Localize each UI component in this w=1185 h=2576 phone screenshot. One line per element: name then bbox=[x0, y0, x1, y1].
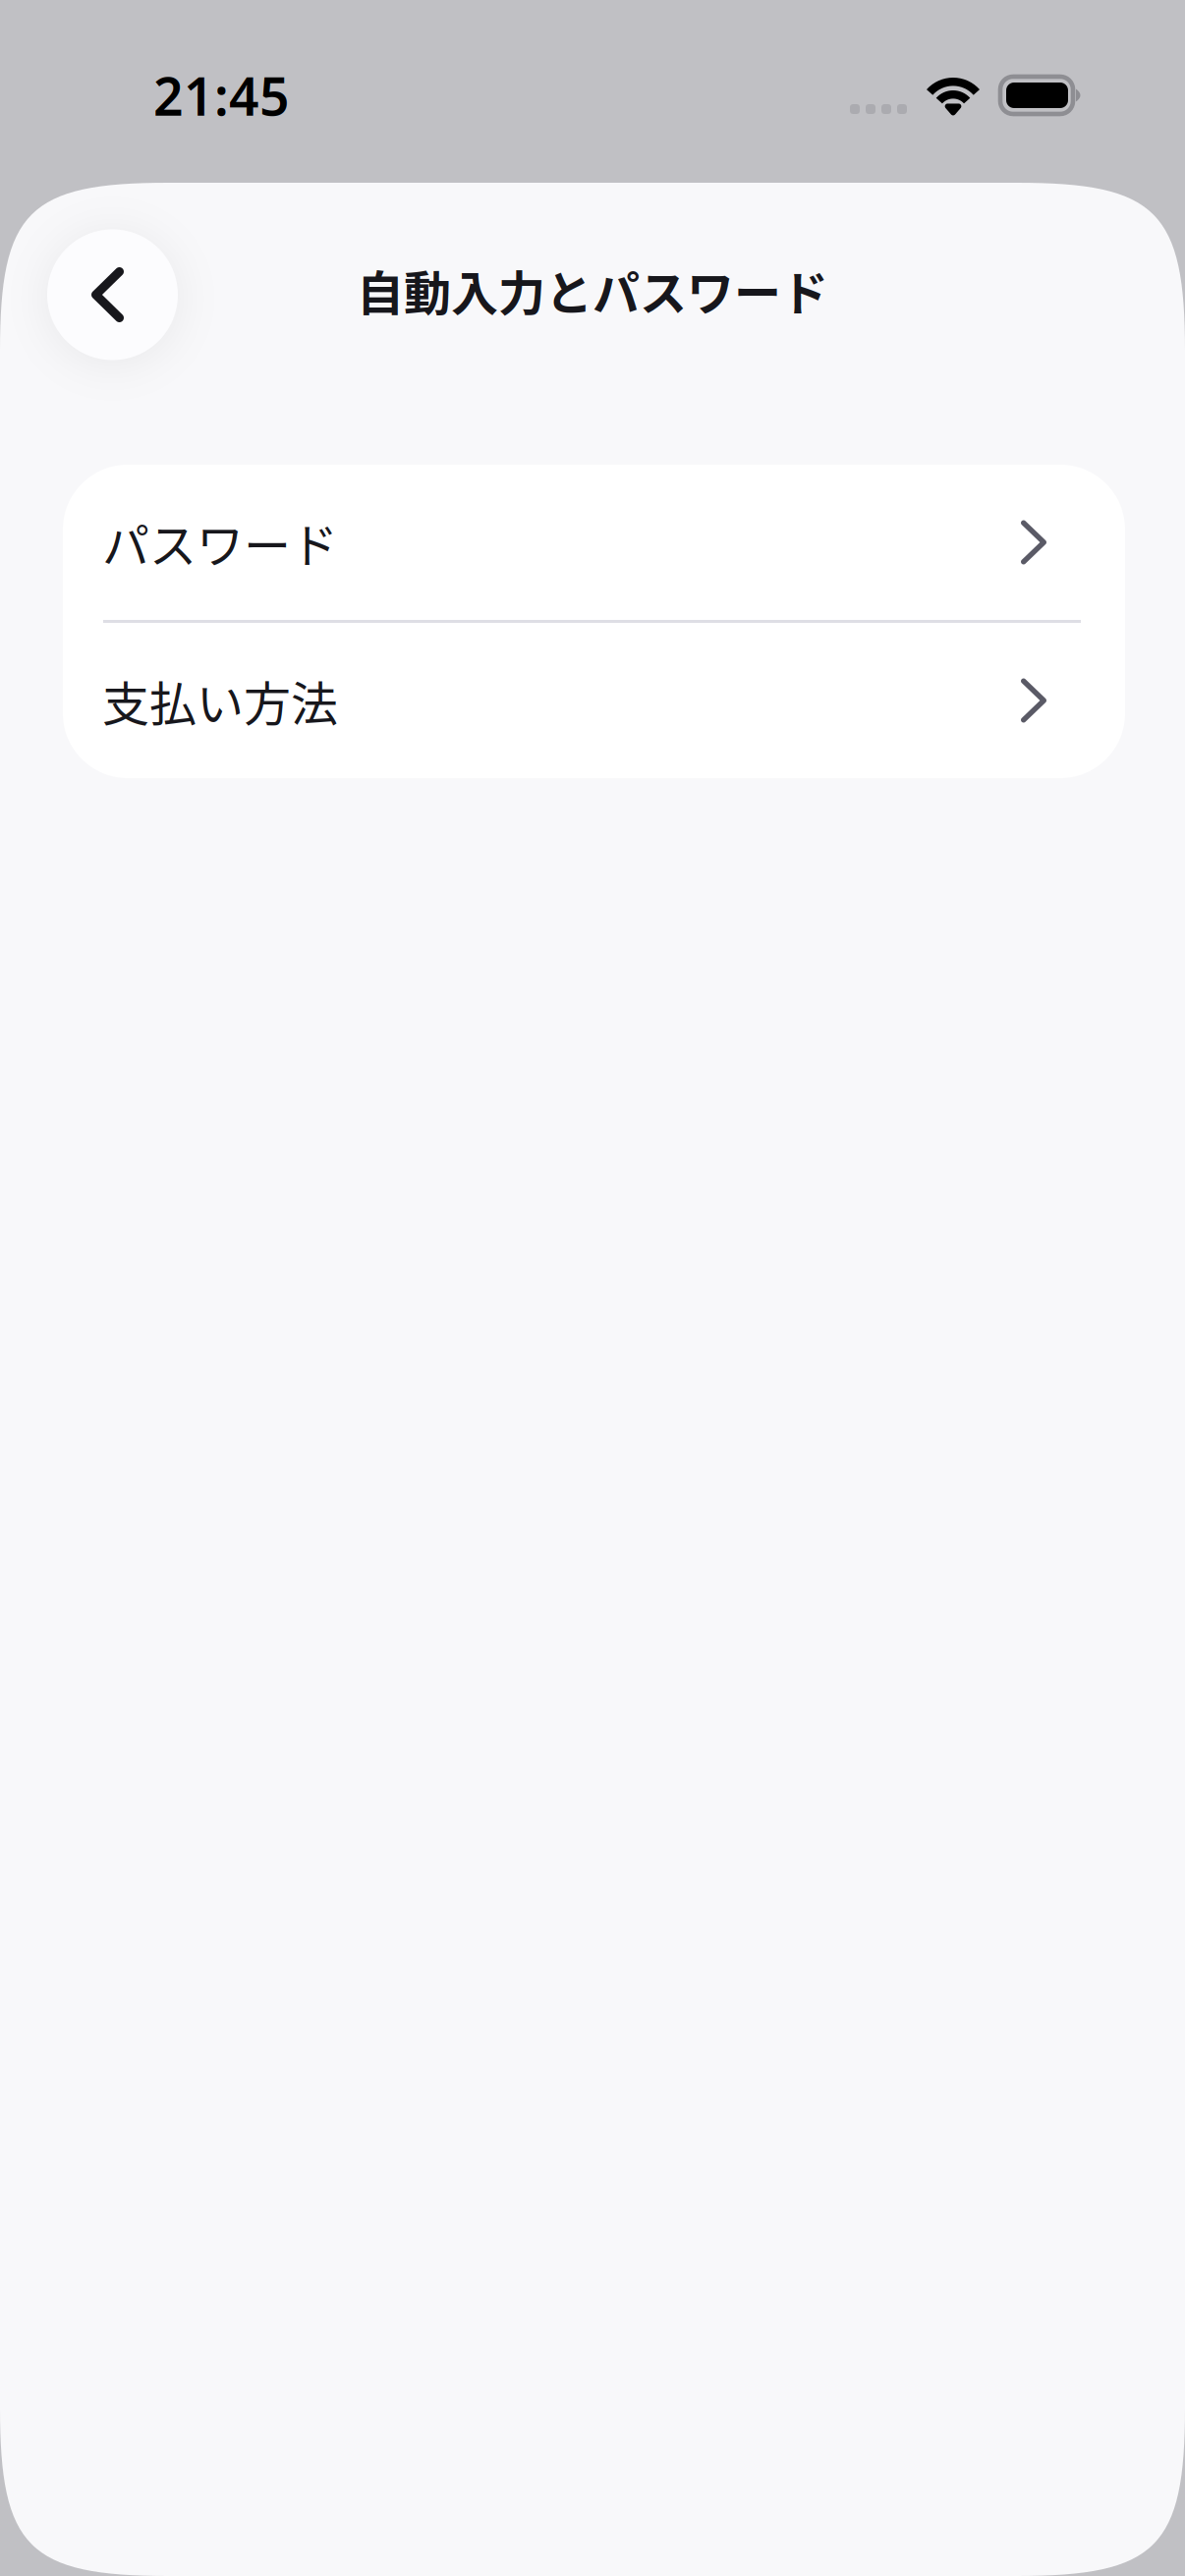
staticText: 自動入力とパスワード bbox=[357, 256, 828, 324]
button[interactable]: パスワード bbox=[63, 465, 1125, 620]
button[interactable]: 支払い方法 bbox=[63, 623, 1125, 778]
staticText: パスワード bbox=[102, 508, 338, 576]
button[interactable]: 戻る bbox=[47, 229, 178, 360]
staticText: 21:45 bbox=[153, 61, 290, 130]
staticText: 支払い方法 bbox=[102, 666, 338, 735]
